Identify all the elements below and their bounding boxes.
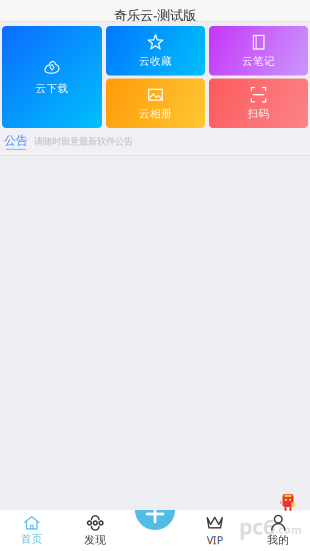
button[interactable]: 发现: [63, 510, 127, 551]
staticText: 公告: [4, 133, 28, 148]
button[interactable]: 我的: [246, 510, 310, 551]
button[interactable]: 云下载: [2, 26, 102, 128]
staticText: 请随时留意最新软件公告: [34, 136, 133, 147]
staticText: 发现: [84, 533, 106, 546]
staticText: 云收藏: [139, 55, 172, 68]
staticText: VIP: [207, 533, 223, 547]
button[interactable]: VIP: [183, 510, 246, 551]
button[interactable]: 扫码: [209, 78, 308, 128]
staticText: 扫码: [247, 107, 269, 120]
staticText: 云笔记: [242, 55, 275, 68]
button[interactable]: 云收藏: [106, 26, 205, 75]
staticText: 云相册: [139, 107, 172, 120]
staticText: 我的: [267, 533, 289, 546]
button[interactable]: 首页: [0, 510, 63, 551]
button[interactable]: 云相册: [106, 78, 205, 128]
staticText: .com: [275, 522, 301, 537]
button[interactable]: 云笔记: [209, 26, 308, 75]
button[interactable]: 公告: [0, 128, 310, 155]
staticText: pc6: [239, 512, 275, 541]
staticText: 首页: [21, 532, 43, 545]
staticText: 奇乐云-测试版: [114, 6, 196, 24]
staticText: 云下载: [35, 82, 68, 95]
